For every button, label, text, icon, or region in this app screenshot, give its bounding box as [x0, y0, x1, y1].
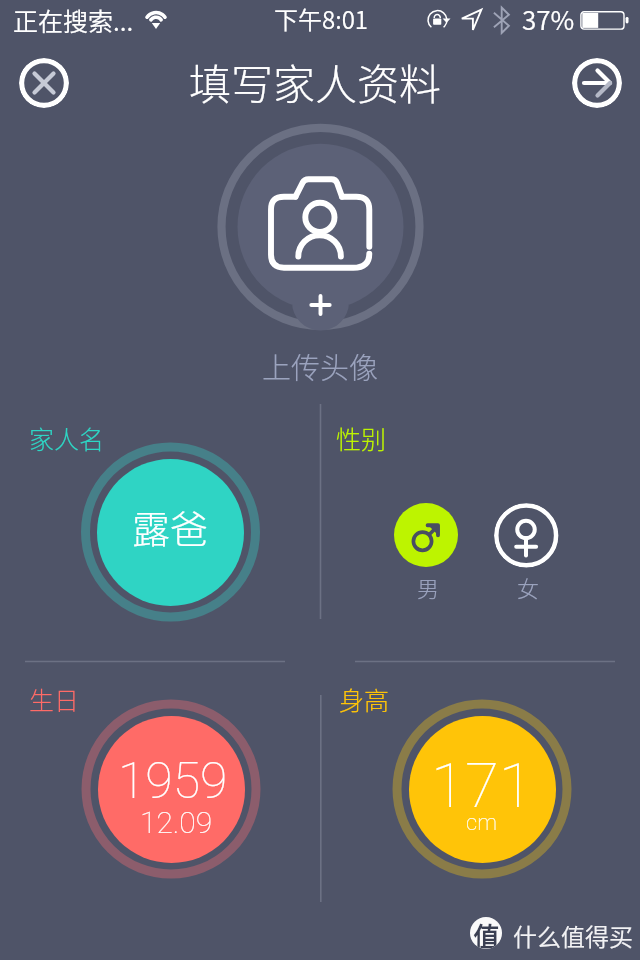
staticText: 男: [417, 571, 440, 603]
button[interactable]: 1959: [98, 716, 245, 863]
staticText: 值: [473, 917, 500, 949]
staticText: 正在搜索...: [13, 2, 134, 38]
staticText: 37%: [522, 0, 575, 38]
button[interactable]: 露爸: [97, 459, 244, 606]
staticText: cm: [466, 810, 497, 836]
button[interactable]: Male: [394, 503, 458, 567]
staticText: 1959: [118, 752, 228, 811]
staticText: 身高: [339, 681, 390, 717]
staticText: 性别: [336, 420, 387, 456]
staticText: 什么值得买: [513, 918, 633, 953]
staticText: 171: [431, 749, 533, 822]
staticText: 上传头像: [262, 345, 379, 387]
button[interactable]: Upload avatar: [214, 120, 428, 334]
staticText: 12.09: [140, 805, 213, 840]
staticText: 家人名: [29, 420, 105, 456]
staticText: 填写家人资料: [189, 51, 442, 112]
staticText: 生日: [29, 681, 80, 717]
button[interactable]: Next: [572, 58, 622, 108]
staticText: 下午8:01: [274, 1, 368, 36]
staticText: 露爸: [132, 499, 209, 554]
button[interactable]: Female: [494, 503, 559, 568]
button[interactable]: 171: [409, 716, 556, 863]
staticText: 女: [517, 571, 540, 603]
button[interactable]: Close: [19, 58, 69, 108]
